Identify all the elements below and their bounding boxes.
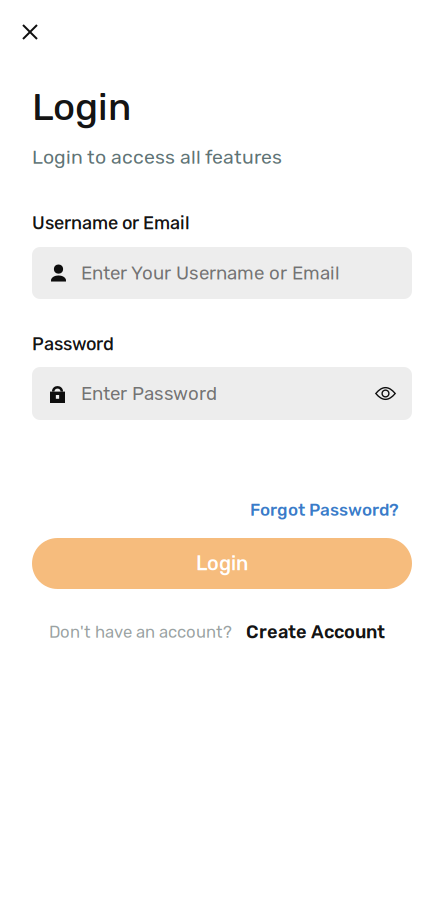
staticText: Enter Your Username or Email (81, 262, 340, 284)
button[interactable]: Create Account (246, 621, 385, 643)
button[interactable]: Show password (375, 387, 396, 400)
staticText: Forgot Password? (250, 500, 399, 520)
staticText: Login (196, 552, 248, 575)
staticText: Enter Password (81, 382, 217, 404)
button[interactable]: Close (10, 12, 50, 52)
staticText: Password (32, 333, 114, 355)
staticText: Login to access all features (32, 145, 282, 169)
staticText: Don't have an account? (49, 622, 232, 642)
staticText: Username or Email (32, 212, 190, 234)
staticText: Login (32, 84, 131, 130)
staticText: Create Account (246, 621, 385, 643)
button[interactable]: Login (32, 538, 412, 589)
button[interactable]: Forgot Password? (250, 500, 399, 520)
